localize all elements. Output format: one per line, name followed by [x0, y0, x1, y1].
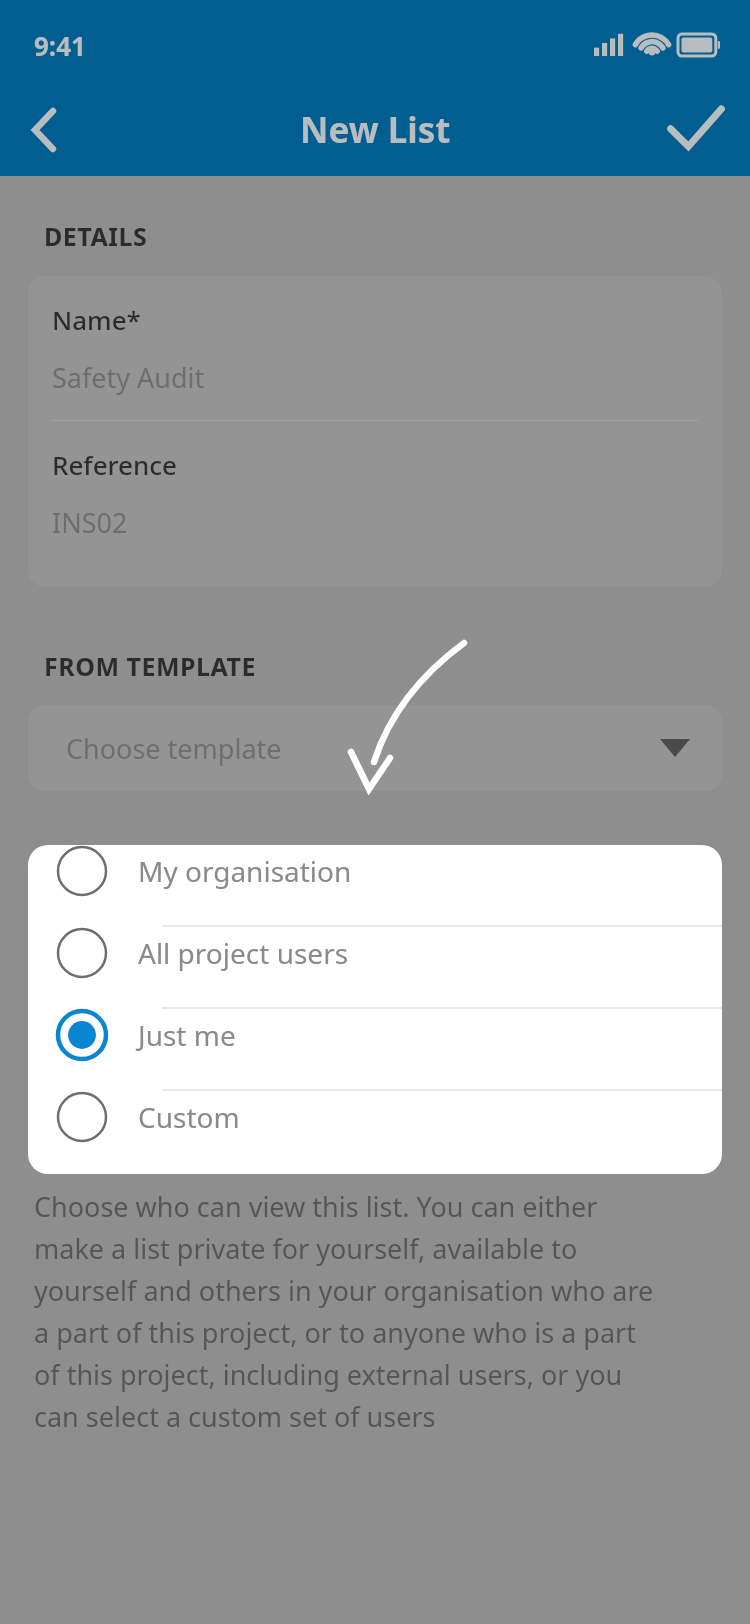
- button[interactable]: Custom: [28, 1091, 722, 1174]
- button[interactable]: Choose template: [28, 705, 722, 791]
- button[interactable]: All project users: [28, 927, 722, 1009]
- staticText: Choose template: [66, 730, 282, 767]
- staticText: Safety Audit: [52, 359, 205, 396]
- button[interactable]: Just me: [28, 1009, 722, 1091]
- staticText: All project users: [138, 934, 349, 972]
- staticText: Choose who can view this list. You can e…: [34, 1188, 654, 1435]
- staticText: 9:41: [34, 28, 86, 63]
- button[interactable]: Save: [662, 97, 728, 163]
- staticText: My organisation: [138, 852, 352, 890]
- button[interactable]: Back: [12, 98, 76, 162]
- staticText: FROM TEMPLATE: [44, 649, 256, 683]
- staticText: INS02: [52, 504, 128, 541]
- staticText: New List: [300, 106, 451, 154]
- button[interactable]: My organisation: [28, 845, 722, 927]
- staticText: DETAILS: [44, 219, 148, 253]
- staticText: Just me: [138, 1016, 236, 1054]
- staticText: Name*: [52, 302, 141, 337]
- staticText: Reference: [52, 447, 177, 482]
- staticText: LIST PRIVACY: [44, 849, 214, 883]
- staticText: Custom: [138, 1098, 240, 1136]
